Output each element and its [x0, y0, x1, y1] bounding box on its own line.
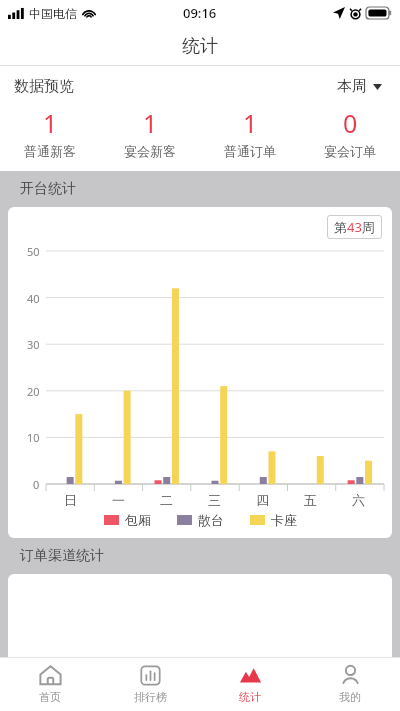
button[interactable]: 卡座 — [250, 512, 297, 528]
staticText: 1 — [243, 106, 258, 140]
staticText: 订单渠道统计 — [20, 547, 104, 565]
button[interactable]: 包厢 — [104, 512, 151, 528]
staticText: 普通新客 — [24, 143, 76, 159]
staticText: 日 — [64, 492, 77, 508]
staticText: 我的 — [339, 690, 361, 704]
staticText: 40 — [27, 291, 40, 306]
staticText: 20 — [27, 384, 40, 399]
staticText: 四 — [256, 492, 269, 508]
staticText: 排行榜 — [134, 690, 167, 704]
staticText: 普通订单 — [224, 143, 276, 159]
staticText: 10 — [27, 430, 40, 445]
button[interactable]: 统计 — [200, 657, 300, 711]
staticText: 0 — [343, 106, 358, 140]
staticText: 宴会订单 — [324, 143, 376, 159]
staticText: 六 — [352, 492, 365, 508]
staticText: 散台 — [198, 512, 224, 528]
staticText: 09:16 — [183, 4, 217, 22]
staticText: 二 — [160, 492, 173, 508]
staticText: 包厢 — [125, 512, 151, 528]
button[interactable]: 我的 — [300, 657, 400, 711]
staticText: 三 — [208, 492, 221, 508]
staticText: 第43周 — [334, 218, 375, 236]
staticText: 数据预览 — [14, 77, 74, 96]
button[interactable]: 本周 — [333, 73, 386, 100]
button[interactable]: 第43周 — [327, 215, 382, 239]
staticText: 一 — [112, 492, 125, 508]
staticText: 首页 — [39, 690, 61, 704]
button[interactable]: 1 — [200, 106, 300, 159]
button[interactable]: 排行榜 — [100, 657, 200, 711]
staticText: 1 — [143, 106, 158, 140]
staticText: 1 — [43, 106, 58, 140]
staticText: 统计 — [182, 35, 218, 58]
staticText: 30 — [27, 337, 40, 352]
staticText: 0 — [33, 477, 40, 492]
staticText: 卡座 — [271, 512, 297, 528]
staticText: 本周 — [337, 77, 367, 96]
button[interactable]: 0 — [300, 106, 400, 159]
staticText: 宴会新客 — [124, 143, 176, 159]
button[interactable]: 1 — [100, 106, 200, 159]
staticText: 开台统计 — [20, 180, 76, 198]
button[interactable]: 1 — [0, 106, 100, 159]
staticText: 50 — [27, 244, 40, 259]
staticText: 统计 — [239, 690, 261, 704]
button[interactable]: 散台 — [177, 512, 224, 528]
staticText: 中国电信 — [29, 6, 77, 21]
staticText: 五 — [304, 492, 317, 508]
button[interactable]: 首页 — [0, 657, 100, 711]
